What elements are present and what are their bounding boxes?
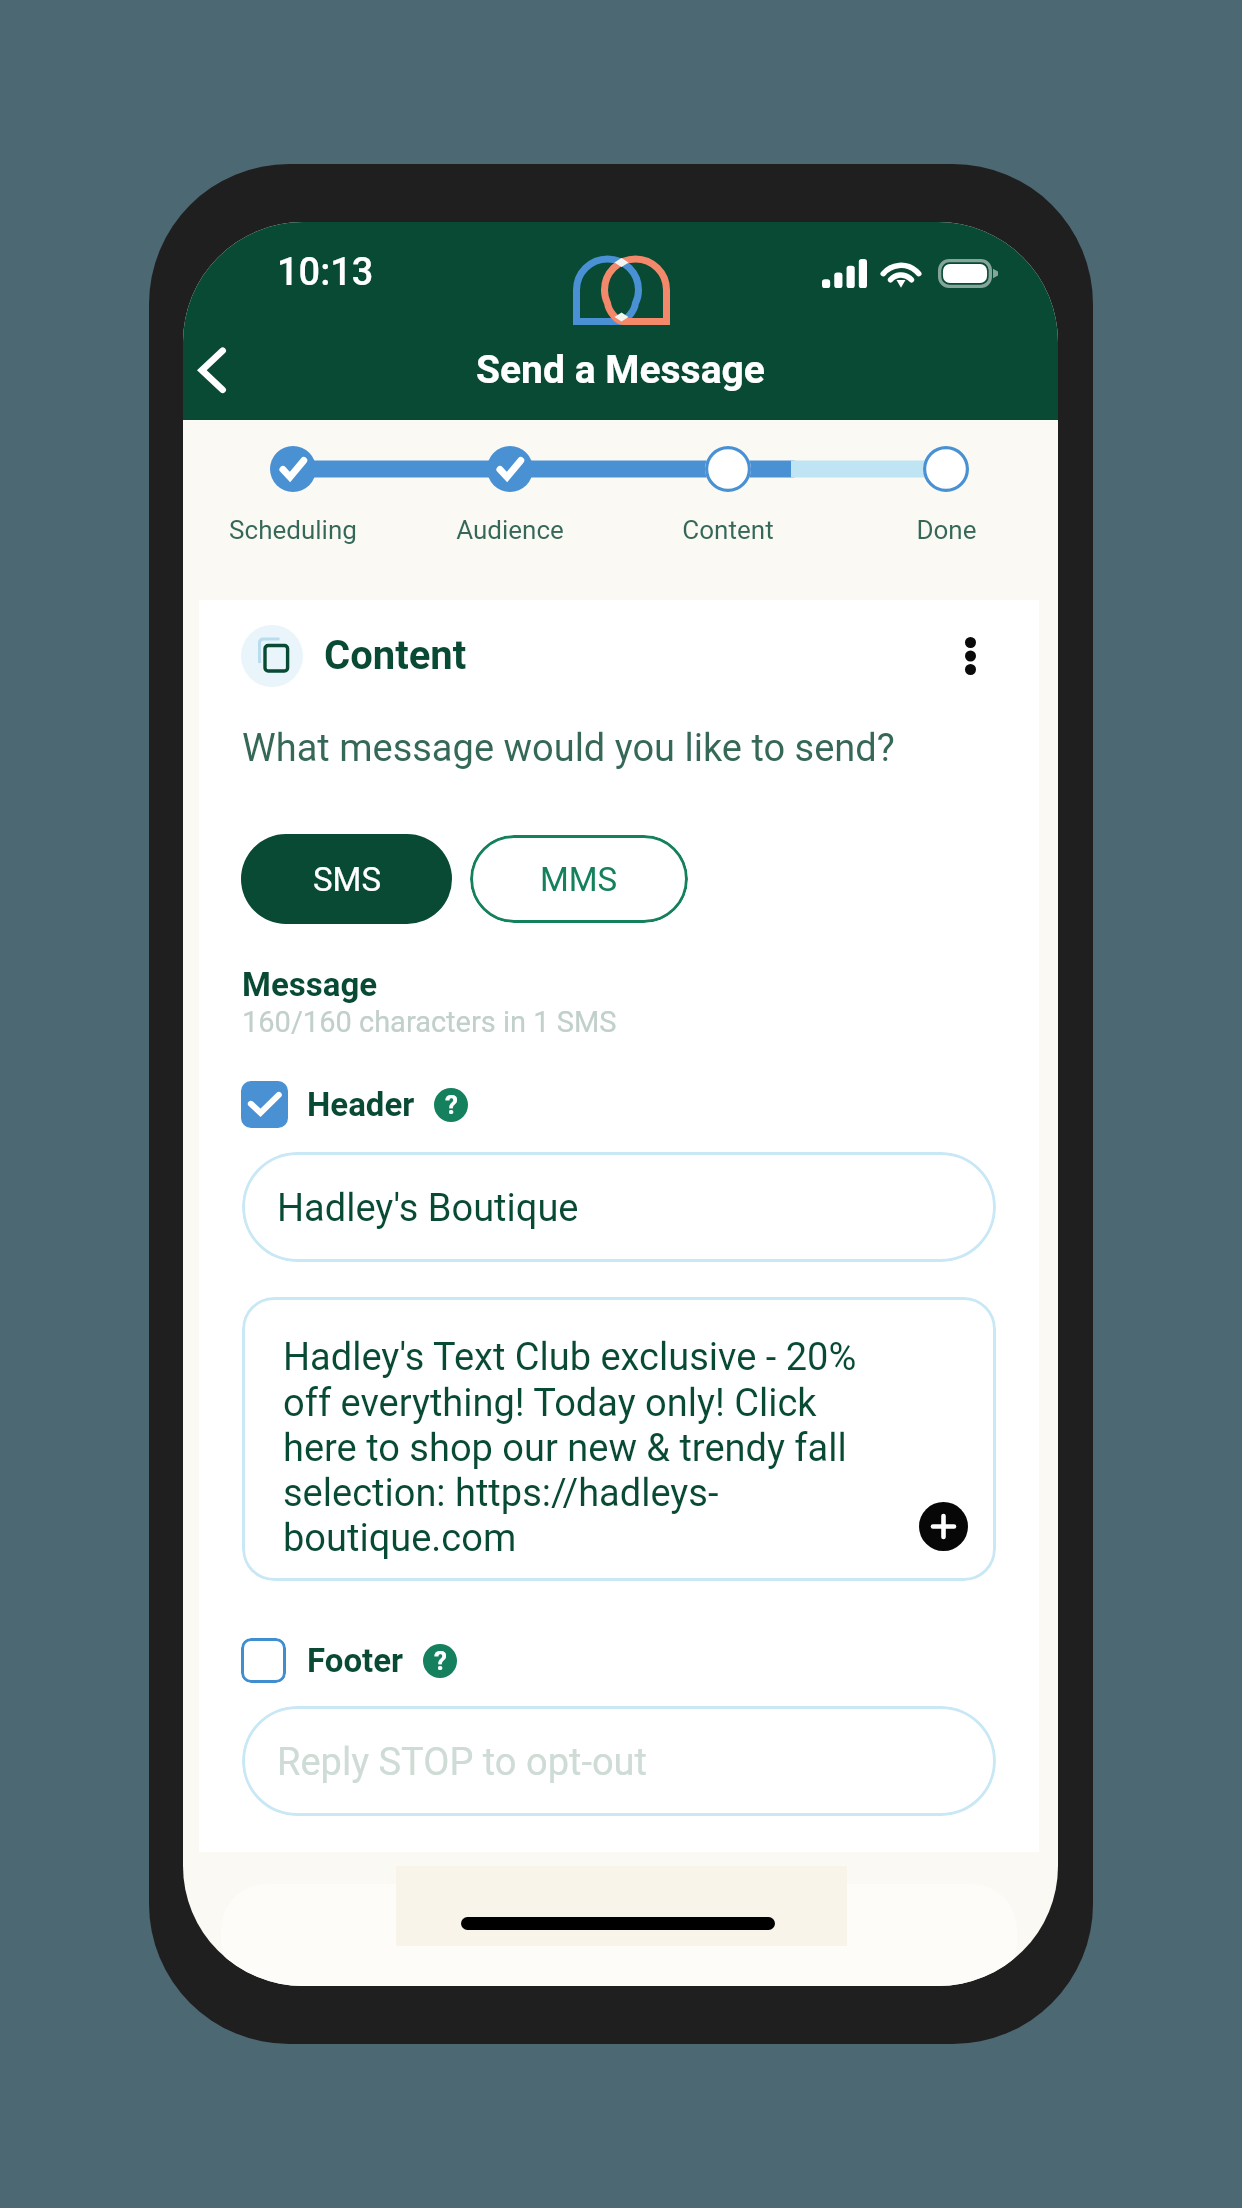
- staticText: 10:13: [277, 250, 374, 295]
- staticText: Hadley's Text Club exclusive - 20% off e…: [283, 1335, 883, 1560]
- staticText: Send a Message: [183, 347, 1058, 393]
- staticText: Reply STOP to opt-out: [277, 1740, 647, 1785]
- button[interactable]: Footer: [241, 1638, 661, 1683]
- button[interactable]: Help: [434, 1088, 468, 1122]
- staticText: What message would you like to send?: [242, 726, 895, 771]
- staticText: MMS: [540, 860, 618, 899]
- button[interactable]: More options: [925, 611, 1015, 701]
- button[interactable]: Hadley's Text Club exclusive - 20% off e…: [242, 1297, 996, 1581]
- staticText: Message: [242, 965, 378, 1004]
- staticText: Audience: [456, 515, 564, 545]
- staticText: Content: [682, 515, 774, 545]
- staticText: Done: [916, 515, 977, 545]
- staticText: ?: [445, 1090, 458, 1120]
- staticText: SMS: [313, 860, 381, 899]
- staticText: Hadley's Boutique: [277, 1186, 579, 1231]
- staticText: Content: [324, 632, 467, 679]
- button[interactable]: Reply STOP to opt-out: [242, 1706, 996, 1816]
- button[interactable]: Audience: [380, 505, 640, 555]
- staticText: Scheduling: [229, 515, 357, 545]
- staticText: 160/160 characters in 1 SMS: [242, 1005, 617, 1039]
- button[interactable]: Back: [183, 326, 273, 414]
- staticText: ?: [434, 1646, 447, 1676]
- button[interactable]: Hadley's Boutique: [242, 1152, 996, 1262]
- button[interactable]: Header: [241, 1081, 661, 1128]
- button[interactable]: MMS: [470, 835, 688, 923]
- button[interactable]: Add: [919, 1502, 968, 1551]
- button[interactable]: SMS: [241, 834, 452, 924]
- staticText: Footer: [307, 1641, 404, 1680]
- staticText: Header: [307, 1085, 415, 1124]
- button[interactable]: Scheduling: [183, 505, 423, 555]
- button[interactable]: Content: [598, 505, 858, 555]
- button[interactable]: Done: [816, 505, 1058, 555]
- button[interactable]: Help: [423, 1644, 457, 1678]
